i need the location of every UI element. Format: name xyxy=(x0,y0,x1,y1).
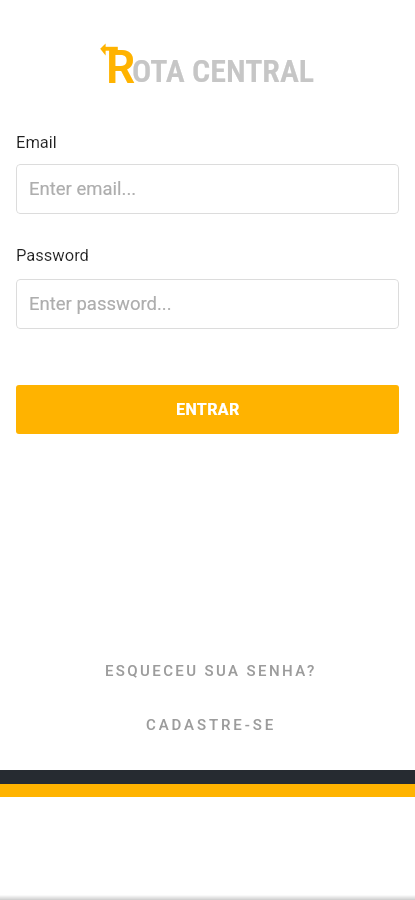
staticText: Password xyxy=(16,246,89,265)
button[interactable]: ESQUECEU SUA SENHA? xyxy=(0,659,415,683)
staticText: ESQUECEU SUA SENHA? xyxy=(105,662,317,680)
button[interactable]: ENTRAR xyxy=(16,385,399,434)
button[interactable]: Enter email... xyxy=(16,164,399,214)
staticText: Enter email... xyxy=(29,178,137,200)
staticText: R xyxy=(106,40,136,90)
staticText: Enter password... xyxy=(29,293,172,315)
button[interactable]: Enter password... xyxy=(16,279,399,329)
staticText: OTA CENTRAL xyxy=(132,52,315,90)
button[interactable]: CADASTRE-SE xyxy=(0,713,415,737)
staticText: CADASTRE-SE xyxy=(146,716,277,734)
staticText: ENTRAR xyxy=(176,400,240,419)
other: Rota Central xyxy=(0,38,415,88)
staticText: Email xyxy=(16,133,57,152)
